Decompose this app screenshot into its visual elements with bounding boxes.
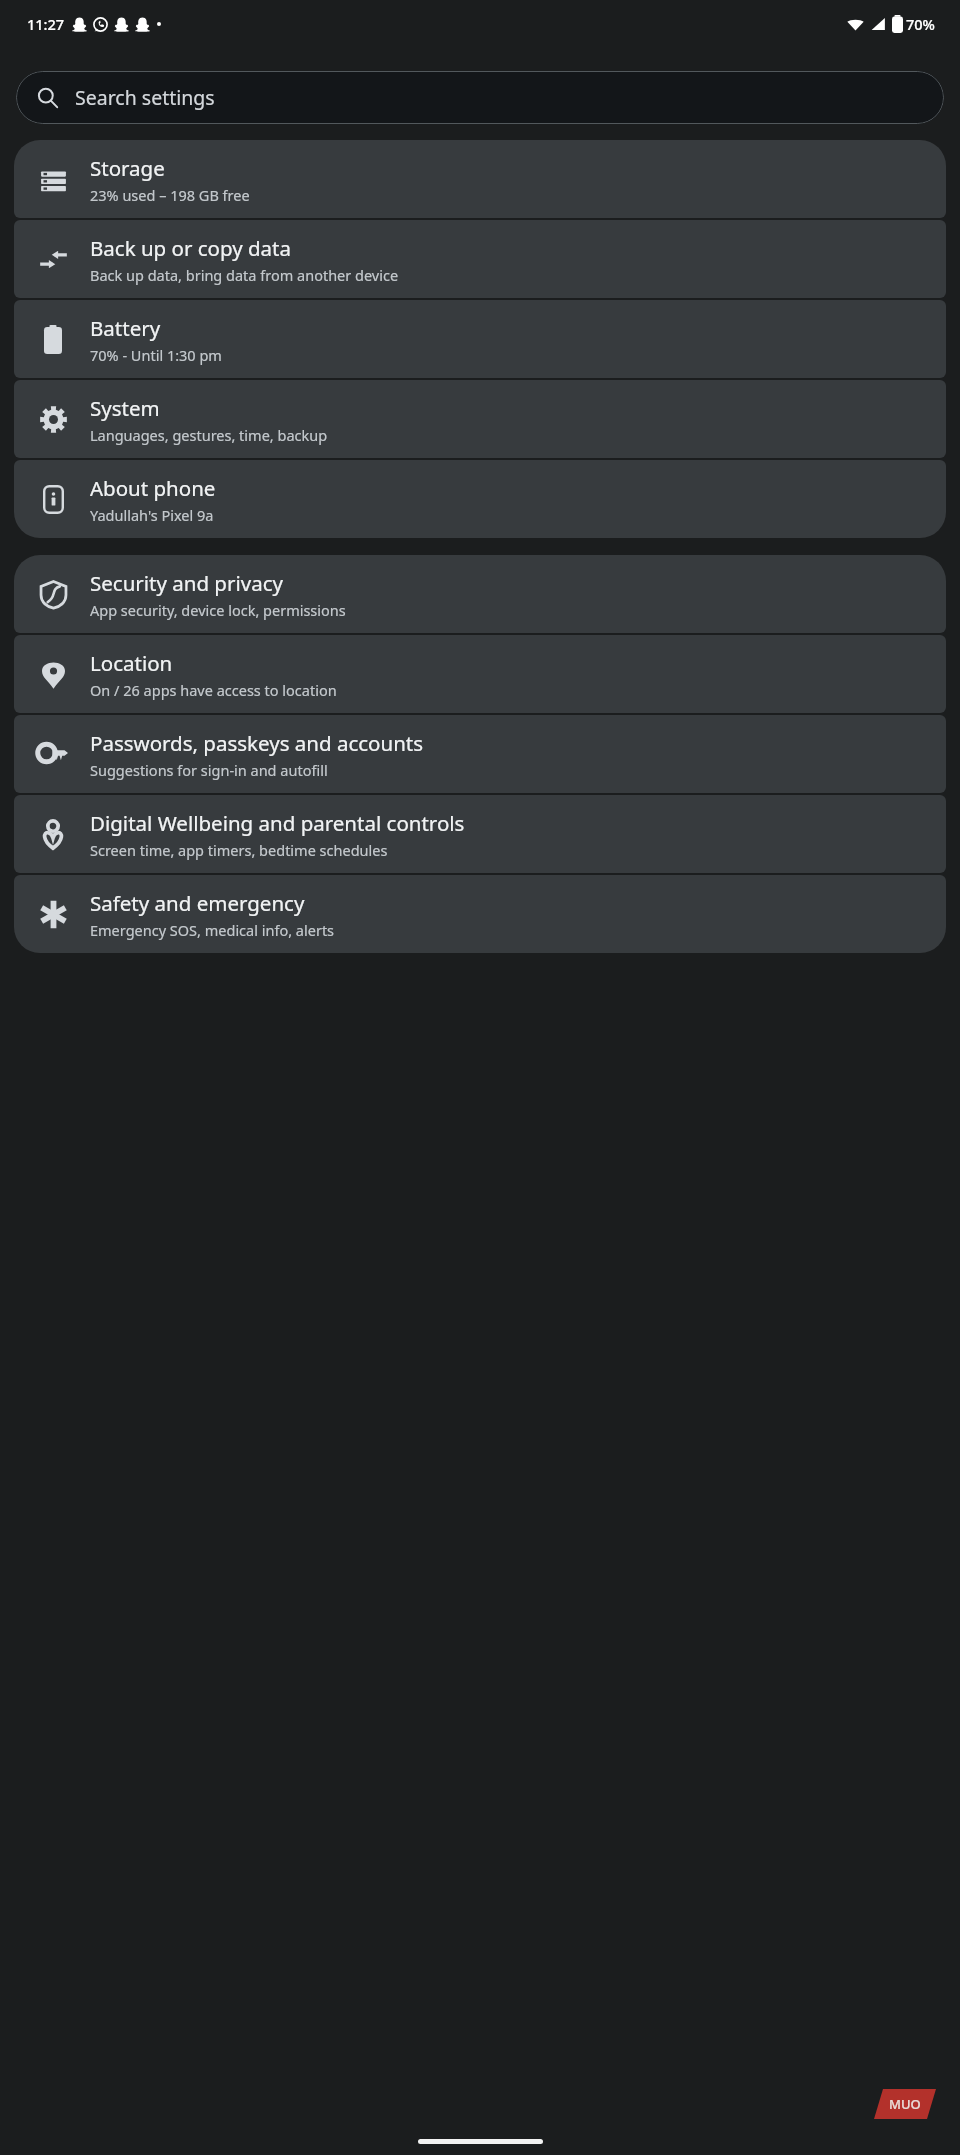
- staticText: Digital Wellbeing and parental controls: [90, 809, 465, 837]
- staticText: Security and privacy: [90, 569, 283, 597]
- button[interactable]: Location: [14, 635, 946, 713]
- button[interactable]: System: [14, 380, 946, 458]
- staticText: MUO: [889, 2095, 921, 2113]
- staticText: Storage: [90, 154, 165, 182]
- staticText: 70% - Until 1:30 pm: [90, 345, 222, 365]
- button[interactable]: Passwords, passkeys and accounts: [14, 715, 946, 793]
- button[interactable]: Storage: [14, 140, 946, 218]
- staticText: On / 26 apps have access to location: [90, 680, 337, 700]
- staticText: Yadullah's Pixel 9a: [90, 505, 214, 525]
- button[interactable]: About phone: [14, 460, 946, 538]
- staticText: About phone: [90, 474, 216, 502]
- button[interactable]: Digital Wellbeing and parental controls: [14, 795, 946, 873]
- staticText: Suggestions for sign-in and autofill: [90, 760, 328, 780]
- staticText: Location: [90, 649, 173, 677]
- staticText: 11:27: [27, 14, 65, 34]
- staticText: Languages, gestures, time, backup: [90, 425, 328, 445]
- staticText: 23% used – 198 GB free: [90, 185, 250, 205]
- button[interactable]: Back up or copy data: [14, 220, 946, 298]
- staticText: Screen time, app timers, bedtime schedul…: [90, 840, 388, 860]
- staticText: Battery: [90, 314, 161, 342]
- staticText: System: [90, 394, 160, 422]
- staticText: Back up or copy data: [90, 234, 291, 262]
- staticText: 70%: [906, 14, 935, 34]
- staticText: Safety and emergency: [90, 889, 305, 917]
- button[interactable]: Security and privacy: [14, 555, 946, 633]
- staticText: Back up data, bring data from another de…: [90, 265, 399, 285]
- staticText: Passwords, passkeys and accounts: [90, 729, 424, 757]
- button[interactable]: Battery: [14, 300, 946, 378]
- staticText: Emergency SOS, medical info, alerts: [90, 920, 335, 940]
- staticText: Search settings: [75, 84, 215, 111]
- button[interactable]: Search settings: [16, 71, 944, 124]
- button[interactable]: Safety and emergency: [14, 875, 946, 953]
- staticText: App security, device lock, permissions: [90, 600, 346, 620]
